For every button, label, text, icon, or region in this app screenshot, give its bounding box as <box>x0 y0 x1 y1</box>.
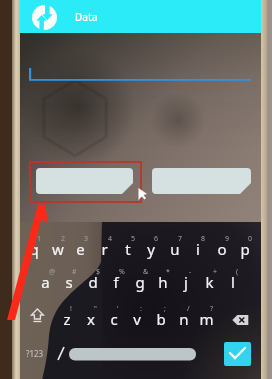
staticText: e <box>76 239 85 259</box>
button[interactable]: + <box>198 263 221 296</box>
button[interactable]: : <box>125 300 148 333</box>
button[interactable]: ; <box>149 300 172 333</box>
staticText: 5 <box>131 234 136 244</box>
staticText: f <box>113 272 119 292</box>
button[interactable]: 9 <box>210 230 233 263</box>
button[interactable]: # <box>57 263 80 296</box>
staticText: * <box>166 267 170 277</box>
staticText: ' <box>117 304 119 314</box>
staticText: a <box>41 272 50 292</box>
button[interactable]: 6 <box>139 230 162 263</box>
staticText: h <box>158 272 168 292</box>
button[interactable]: 2 <box>46 230 69 263</box>
button[interactable]: * <box>151 263 174 296</box>
staticText: : <box>140 304 142 314</box>
staticText: ( <box>236 267 239 277</box>
button[interactable]: - <box>174 263 197 296</box>
staticText: 8 <box>201 234 206 244</box>
staticText: % <box>119 267 125 277</box>
button[interactable]: 3 <box>69 230 92 263</box>
staticText: m <box>199 309 214 329</box>
staticText: k <box>205 272 214 292</box>
staticText: 6 <box>154 234 159 244</box>
staticText: 4 <box>108 234 113 244</box>
staticText: p <box>240 239 250 259</box>
staticText: " <box>94 304 97 314</box>
staticText: d <box>88 272 98 292</box>
staticText: $ <box>96 267 101 277</box>
button[interactable]: " <box>79 300 102 333</box>
button[interactable]: / <box>172 300 195 333</box>
staticText: 0 <box>248 234 253 244</box>
staticText: ; <box>164 304 166 314</box>
staticText: + <box>213 267 218 277</box>
button[interactable]: @ <box>34 263 57 296</box>
staticText: x <box>87 309 95 329</box>
button[interactable]: 5 <box>116 230 139 263</box>
staticText: ! <box>70 304 72 314</box>
button[interactable]: Data transfer <box>31 4 57 30</box>
staticText: g <box>135 272 145 292</box>
staticText: b <box>156 309 166 329</box>
staticText: 1 <box>37 234 42 244</box>
staticText: & <box>143 267 149 277</box>
button[interactable]: ! <box>55 300 78 333</box>
staticText: l <box>231 272 235 292</box>
staticText: s <box>65 272 73 292</box>
button[interactable]: 0 <box>233 230 256 263</box>
button[interactable]: % <box>104 263 127 296</box>
staticText: y <box>147 239 155 259</box>
staticText: i <box>196 239 200 259</box>
staticText: v <box>133 309 141 329</box>
staticText: o <box>217 239 227 259</box>
button[interactable]: ' <box>102 300 125 333</box>
button[interactable]: Data transfer <box>20 0 261 33</box>
staticText: 2 <box>61 234 66 244</box>
staticText: / <box>187 304 190 314</box>
staticText: q <box>29 239 39 259</box>
button[interactable]: $ <box>81 263 104 296</box>
staticText: u <box>170 239 180 259</box>
staticText: r <box>101 239 108 259</box>
button[interactable]: ( <box>221 263 244 296</box>
staticText: c <box>110 309 118 329</box>
staticText: w <box>52 239 64 259</box>
button[interactable]: ? <box>195 300 218 333</box>
staticText: ?123 <box>26 348 44 359</box>
staticText: t <box>125 239 131 259</box>
button[interactable]: 8 <box>186 230 209 263</box>
staticText: z <box>63 309 71 329</box>
button[interactable]: ?123 <box>26 348 44 359</box>
staticText: 9 <box>225 234 230 244</box>
button[interactable]: & <box>128 263 151 296</box>
staticText: # <box>72 267 77 277</box>
button[interactable]: 7 <box>163 230 186 263</box>
button[interactable]: 1 <box>22 230 45 263</box>
button[interactable]: 1 <box>20 223 261 379</box>
staticText: n <box>179 309 189 329</box>
staticText: 3 <box>84 234 89 244</box>
staticText: - <box>189 267 192 277</box>
staticText: ? <box>210 304 214 314</box>
button[interactable]: 4 <box>93 230 116 263</box>
staticText: @ <box>49 267 56 277</box>
staticText: j <box>184 272 188 292</box>
staticText: 7 <box>178 234 183 244</box>
staticText: Data <box>75 10 98 24</box>
